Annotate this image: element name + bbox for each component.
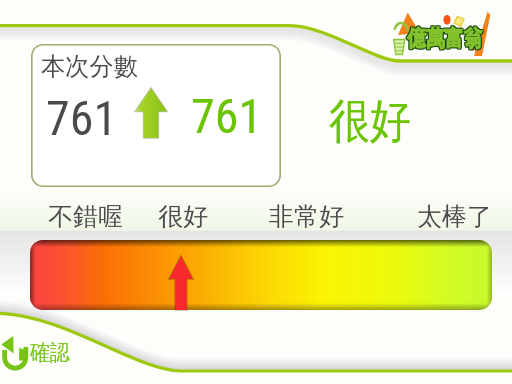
staticText: 太棒了 [417,201,492,232]
staticText: 億萬富翁 [406,26,481,54]
staticText: 761 [191,88,263,144]
other: 確認 [0,333,29,370]
staticText: 億萬富翁 [407,25,482,53]
staticText: 億萬富翁 [408,25,483,53]
staticText: 本次分數 [41,51,138,82]
staticText: 很好 [158,201,208,232]
staticText: 億萬富翁 [406,24,481,52]
staticText: 億萬富翁 [406,25,481,53]
staticText: 確認 [30,339,70,367]
button[interactable] [30,240,492,310]
staticText: 不錯喔 [48,201,123,232]
staticText: 很好 [329,92,411,151]
staticText: 億萬富翁 [408,24,483,52]
button[interactable]: 非常好 [269,201,344,232]
staticText: 億萬富翁 [408,26,483,54]
staticText: 億萬富翁 [407,26,482,54]
button[interactable]: 不錯喔 [48,201,123,232]
staticText: 億萬富翁 [407,24,482,52]
button[interactable]: 很好 [158,201,208,232]
staticText: 761 [46,90,118,146]
button[interactable]: 本次分數 [31,44,281,187]
button[interactable]: 確認 [0,332,74,370]
staticText: 非常好 [269,201,344,232]
button[interactable]: 億萬富翁 [386,4,496,60]
button[interactable]: 太棒了 [417,201,492,232]
